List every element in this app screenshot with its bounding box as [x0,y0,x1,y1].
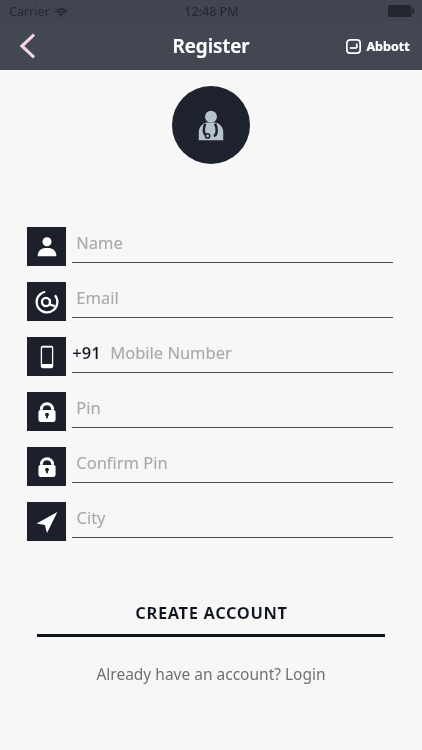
staticText: +91 [72,341,101,363]
staticText: Abbott [366,38,410,55]
button[interactable]: Profile photo [172,86,250,164]
staticText: Pin [76,396,101,418]
button[interactable]: CREATE ACCOUNT [0,601,422,637]
staticText: Mobile Number [110,341,232,363]
button[interactable]: Confirm Pin [0,447,422,502]
button[interactable]: Pin [0,392,422,447]
button[interactable]: Back [0,22,56,70]
staticText: Confirm Pin [76,451,168,473]
staticText: City [76,506,106,528]
staticText: Carrier [9,3,50,20]
button[interactable]: Abbott [346,38,410,55]
button[interactable]: City [0,502,422,557]
button[interactable]: Name [0,227,422,282]
button[interactable]: Already have an account? Login [96,663,326,684]
staticText: CREATE ACCOUNT [135,601,288,623]
staticText: 12:48 PM [184,3,239,20]
staticText: Register [172,33,250,59]
button[interactable]: +91 [0,337,422,392]
staticText: Email [76,286,119,308]
staticText: Name [76,231,123,253]
button[interactable]: Email [0,282,422,337]
